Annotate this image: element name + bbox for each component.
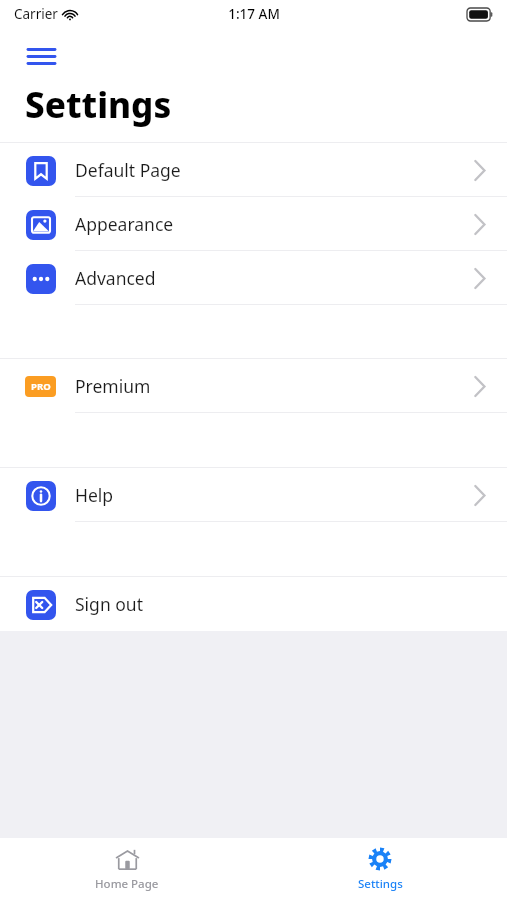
staticText: Default Page xyxy=(75,158,474,182)
staticText: Home Page xyxy=(95,876,159,892)
button[interactable]: Menu xyxy=(20,40,63,72)
button[interactable]: Default Page xyxy=(0,143,507,197)
staticText: Carrier xyxy=(14,5,58,23)
button[interactable]: Sign out xyxy=(0,577,507,631)
staticText: Settings xyxy=(25,81,172,129)
button[interactable]: Settings xyxy=(253,838,507,900)
button[interactable]: Advanced xyxy=(0,251,507,305)
staticText: Sign out xyxy=(75,592,485,616)
staticText: Premium xyxy=(75,374,474,398)
staticText: 1:17 AM xyxy=(228,5,280,23)
staticText: PRO xyxy=(31,380,51,393)
button[interactable]: Home Page xyxy=(0,838,253,900)
staticText: Advanced xyxy=(75,266,474,290)
button[interactable]: PRO xyxy=(0,359,507,413)
button[interactable]: Appearance xyxy=(0,197,507,251)
button[interactable]: Help xyxy=(0,468,507,522)
staticText: Help xyxy=(75,483,474,507)
staticText: Settings xyxy=(358,876,403,892)
staticText: Appearance xyxy=(75,212,474,236)
